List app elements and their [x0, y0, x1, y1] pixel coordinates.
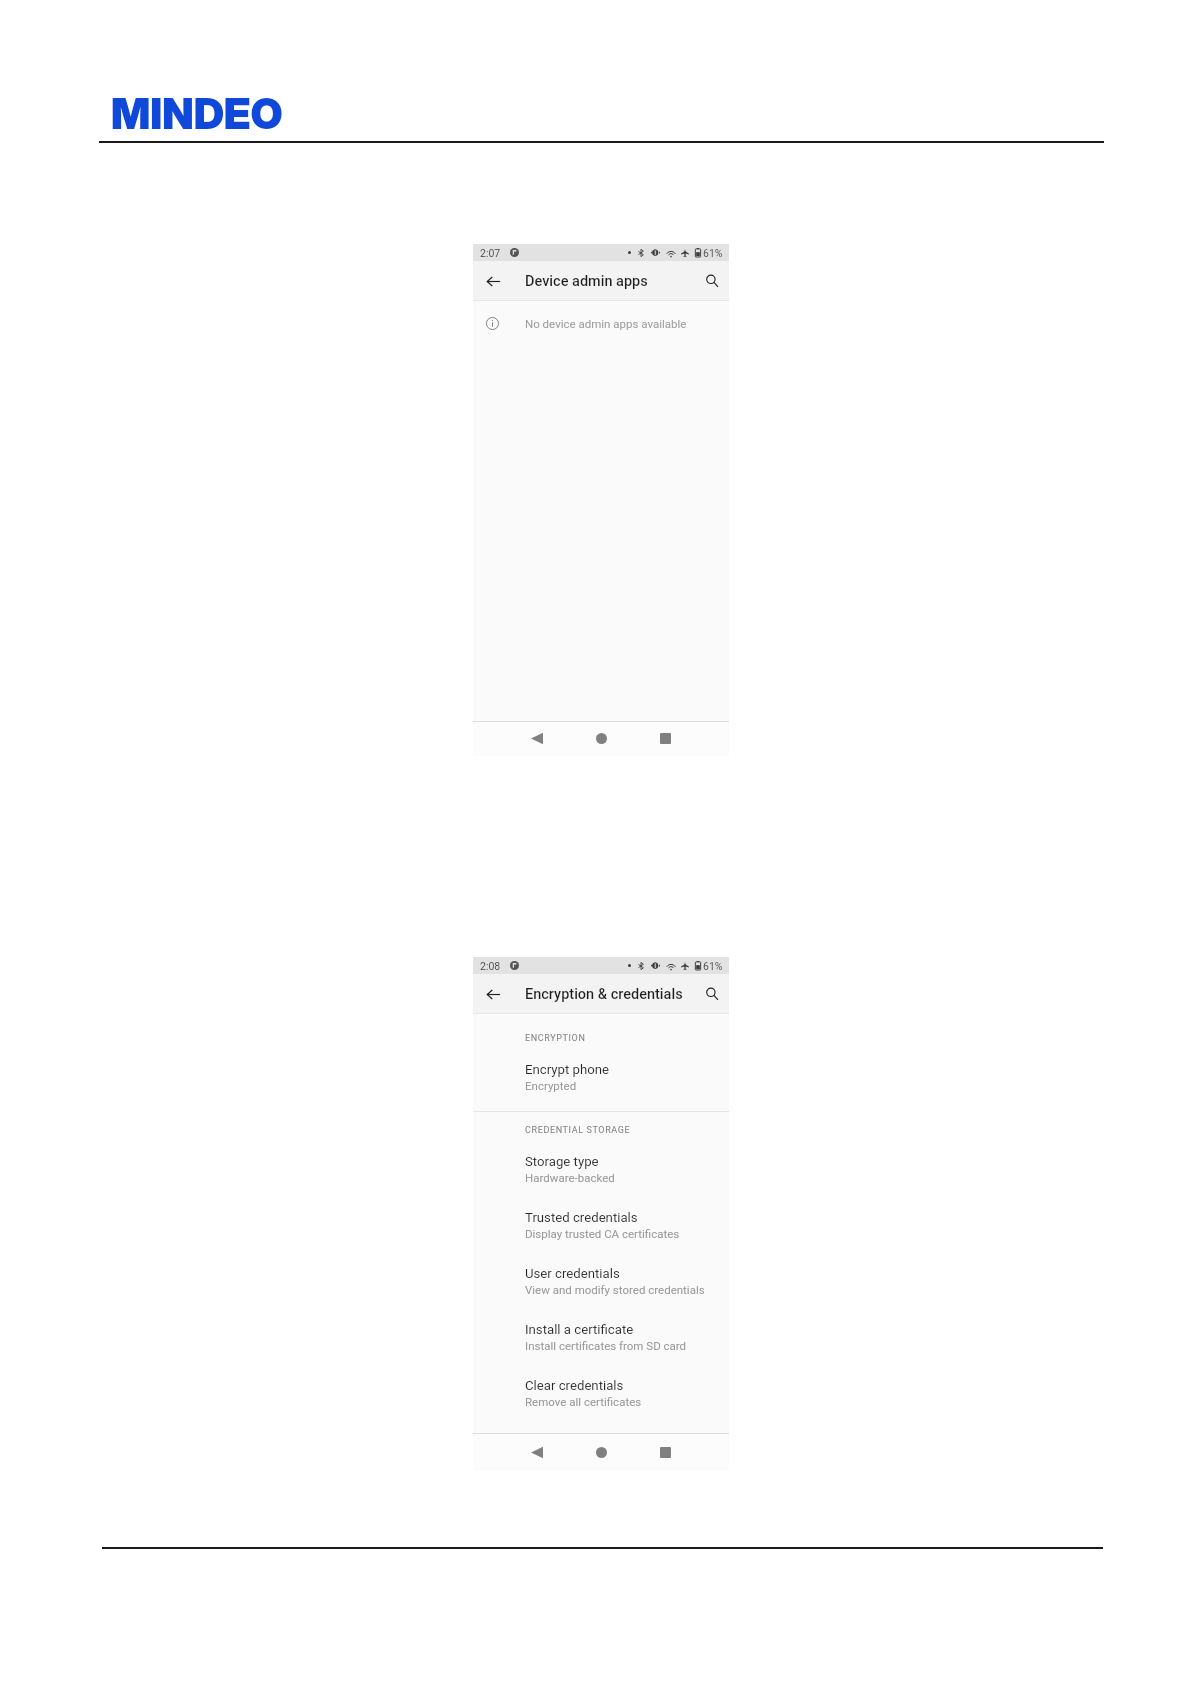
staticText: 61% [703, 960, 723, 972]
button[interactable]: Encrypt phone [473, 1053, 729, 1109]
staticText: Remove all certificates [525, 1395, 642, 1408]
button[interactable]: Home [569, 1433, 633, 1471]
staticText: Display trusted CA certificates [525, 1227, 680, 1240]
button[interactable]: Trusted credentials [473, 1201, 729, 1257]
button[interactable]: Search [695, 974, 729, 1014]
staticText: Install certificates from SD card [525, 1339, 687, 1352]
staticText: Hardware-backed [525, 1171, 615, 1184]
staticText: No device admin apps available [525, 317, 687, 330]
button[interactable]: Navigate up [473, 974, 513, 1014]
staticText: 2:08 [480, 960, 501, 972]
button[interactable]: Home [569, 721, 633, 756]
staticText: 2:07 [480, 247, 501, 259]
staticText: MINDEO [111, 88, 283, 139]
staticText: CREDENTIAL STORAGE [525, 1125, 631, 1136]
button[interactable]: Install a certificate [473, 1313, 729, 1369]
button[interactable]: Search [695, 261, 729, 301]
button[interactable]: Back [505, 1433, 569, 1471]
button[interactable]: Storage type [473, 1145, 729, 1201]
staticText: Encryption & credentials [525, 986, 683, 1003]
staticText: Trusted credentials [525, 1210, 638, 1225]
staticText: Device admin apps [525, 273, 648, 290]
staticText: User credentials [525, 1266, 620, 1281]
button[interactable]: Clear credentials [473, 1369, 729, 1425]
staticText: Encrypted [525, 1079, 577, 1092]
staticText: Clear credentials [525, 1378, 624, 1393]
staticText: ENCRYPTION [525, 1033, 586, 1044]
staticText: Install a certificate [525, 1322, 634, 1337]
button[interactable]: User credentials [473, 1257, 729, 1313]
button[interactable]: No device admin apps available [473, 301, 729, 345]
button[interactable]: Recent apps [633, 1433, 697, 1471]
button[interactable]: Back [505, 721, 569, 756]
staticText: 61% [703, 247, 723, 259]
staticText: Storage type [525, 1154, 599, 1169]
staticText: View and modify stored credentials [525, 1283, 705, 1296]
button[interactable]: Navigate up [473, 261, 513, 301]
staticText: Encrypt phone [525, 1062, 609, 1077]
button[interactable]: Recent apps [633, 721, 697, 756]
